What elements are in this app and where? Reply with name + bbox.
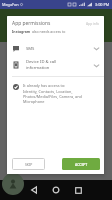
button[interactable]: Back bbox=[25, 181, 43, 199]
staticText: ACCEPT bbox=[75, 162, 88, 167]
staticText: App info bbox=[86, 21, 100, 25]
staticText: 3:00 PM bbox=[95, 2, 110, 7]
button[interactable]: Home bbox=[47, 181, 65, 199]
staticText: information bbox=[26, 65, 50, 71]
button[interactable]: SKIP bbox=[12, 158, 45, 170]
staticText: Instagram bbox=[12, 29, 31, 34]
staticText: SKIP bbox=[25, 162, 33, 167]
staticText: Photos/Media/Files, Camera, and bbox=[23, 94, 82, 99]
staticText: App permissions bbox=[12, 20, 51, 27]
button[interactable]: Recent apps bbox=[69, 181, 87, 199]
button[interactable]: Device ID & call bbox=[7, 56, 104, 74]
staticText: MegaFon bbox=[2, 2, 19, 7]
staticText: SMS bbox=[26, 46, 35, 52]
staticText: also needs access to bbox=[31, 29, 66, 34]
staticText: It already has access to: bbox=[23, 83, 66, 88]
button[interactable]: ACCEPT bbox=[62, 158, 100, 170]
staticText: Device ID & call bbox=[26, 59, 57, 65]
button[interactable]: Account bbox=[2, 173, 24, 195]
staticText: Identity, Contacts, Location, bbox=[23, 89, 73, 94]
button[interactable]: SMS bbox=[7, 41, 104, 56]
staticText: Microphone bbox=[23, 99, 45, 104]
